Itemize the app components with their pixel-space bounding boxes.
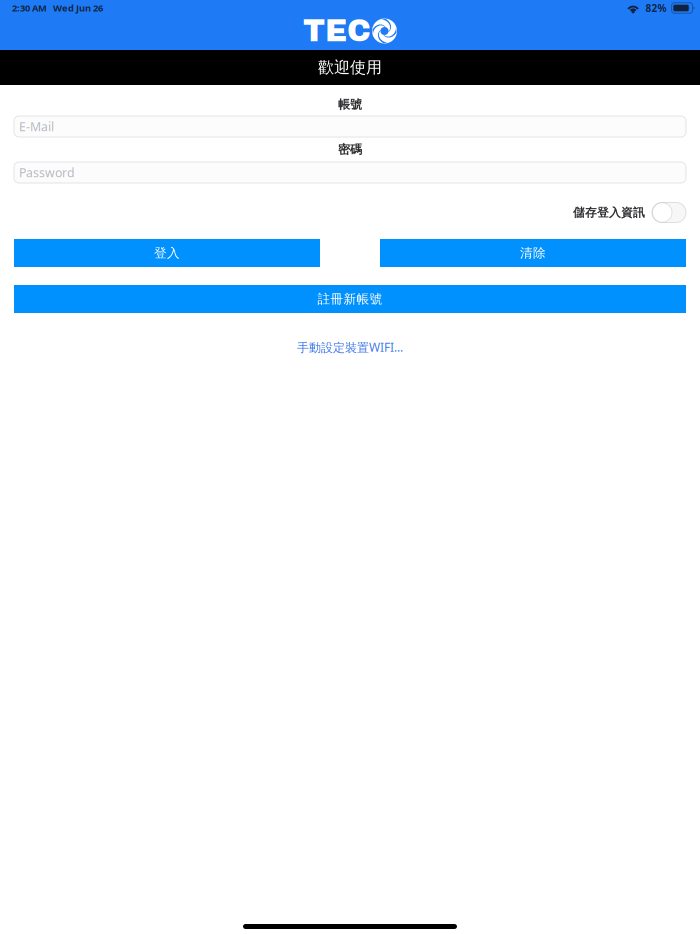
staticText: 登入 bbox=[154, 245, 180, 261]
staticText: 清除 bbox=[520, 245, 546, 261]
button[interactable]: 清除 bbox=[380, 239, 686, 267]
staticText: 歡迎使用 bbox=[318, 57, 382, 78]
button[interactable]: 註冊新帳號 bbox=[14, 285, 686, 313]
staticText: 註冊新帳號 bbox=[317, 291, 382, 307]
staticText: 82% bbox=[646, 1, 667, 15]
button[interactable]: 登入 bbox=[14, 239, 320, 267]
staticText: Password bbox=[19, 164, 75, 181]
button[interactable]: E-Mail bbox=[14, 116, 686, 137]
staticText: 儲存登入資訊 bbox=[573, 205, 645, 220]
staticText: 帳號 bbox=[338, 97, 362, 112]
staticText: TEC bbox=[303, 14, 371, 48]
button[interactable]: Password bbox=[14, 162, 686, 183]
staticText: 2:30 AM Wed Jun 26 bbox=[12, 2, 103, 14]
staticText: E-Mail bbox=[19, 118, 54, 135]
staticText: 密碼 bbox=[338, 142, 362, 157]
button[interactable]: 手動設定裝置WIFI... bbox=[291, 333, 409, 361]
button[interactable]: 儲存登入資訊 bbox=[573, 202, 686, 222]
staticText: 手動設定裝置WIFI... bbox=[297, 339, 403, 355]
